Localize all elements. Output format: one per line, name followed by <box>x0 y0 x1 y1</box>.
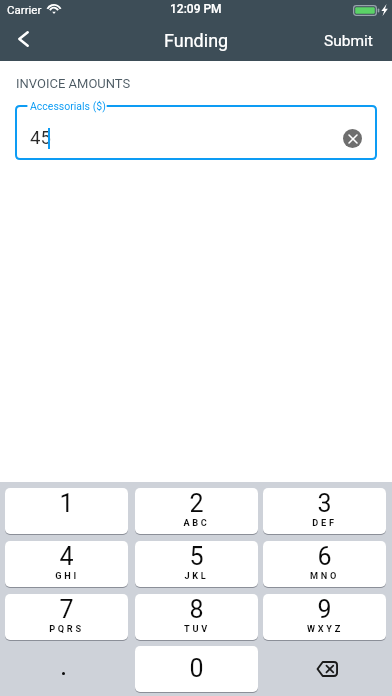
button[interactable]: 2 <box>135 488 258 534</box>
button[interactable]: 45 <box>15 105 377 160</box>
staticText: 45 <box>30 127 51 149</box>
staticText: PQRS <box>49 623 84 634</box>
button[interactable] <box>5 646 128 692</box>
staticText: Accessorials ($) <box>30 100 106 112</box>
button[interactable]: Submit <box>316 28 381 54</box>
button[interactable]: 6 <box>263 541 386 587</box>
staticText: 9 <box>317 595 332 624</box>
staticText: 8 <box>189 595 204 624</box>
staticText: TUV <box>184 623 210 634</box>
button[interactable]: Backspace <box>263 646 386 692</box>
button[interactable]: 5 <box>135 541 258 587</box>
staticText: 0 <box>189 654 204 683</box>
staticText: DEF <box>312 517 337 528</box>
staticText: 12:09 PM <box>170 2 222 16</box>
button[interactable]: 0 <box>135 646 258 692</box>
button[interactable]: Back <box>8 25 38 53</box>
staticText: ABC <box>183 517 210 528</box>
staticText: INVOICE AMOUNTS <box>16 76 131 91</box>
staticText: 6 <box>317 542 332 571</box>
staticText: Funding <box>164 30 229 51</box>
staticText: Submit <box>324 32 373 50</box>
staticText: Carrier <box>7 3 42 16</box>
button[interactable]: 1 <box>5 488 128 534</box>
staticText: 1 <box>59 489 74 518</box>
staticText: GHI <box>55 570 79 581</box>
staticText: 3 <box>317 489 332 518</box>
button[interactable]: 7 <box>5 594 128 640</box>
button[interactable]: 8 <box>135 594 258 640</box>
staticText: 4 <box>59 542 74 571</box>
button[interactable]: 9 <box>263 594 386 640</box>
button[interactable]: Clear text <box>343 129 362 148</box>
staticText: 7 <box>59 595 74 624</box>
staticText: JKL <box>184 570 209 581</box>
button[interactable]: 4 <box>5 541 128 587</box>
button[interactable]: 3 <box>263 488 386 534</box>
staticText: 2 <box>189 489 204 518</box>
staticText: WXYZ <box>307 623 343 634</box>
staticText: MNO <box>310 570 339 581</box>
staticText: 5 <box>189 542 204 571</box>
